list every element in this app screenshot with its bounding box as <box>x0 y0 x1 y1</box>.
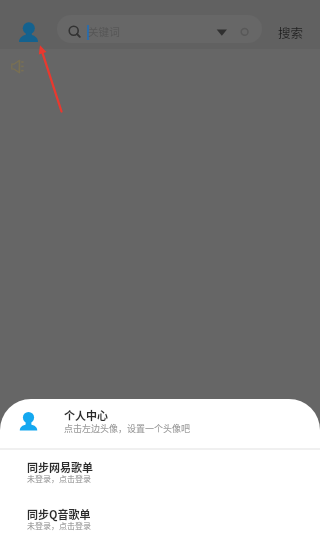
button[interactable]: 同步Q音歌单 <box>0 502 320 546</box>
button[interactable]: 搜索 <box>278 23 304 41</box>
button[interactable]: Volume <box>11 60 24 73</box>
staticText: 未登录，点击登录 <box>27 473 91 485</box>
button[interactable]: 个人中心 <box>0 399 320 448</box>
button[interactable]: 同步网易歌单 <box>0 455 320 499</box>
button[interactable]: 关键词 <box>57 15 262 43</box>
button[interactable]: Profile avatar <box>18 21 38 41</box>
staticText: 同步Q音歌单 <box>27 506 91 522</box>
staticText: 个人中心 <box>64 407 108 423</box>
staticText: 未登录，点击登录 <box>27 520 91 532</box>
staticText: 点击左边头像，设置一个头像吧 <box>64 422 191 435</box>
staticText: 关键词 <box>88 24 120 39</box>
staticText: 同步网易歌单 <box>27 459 93 475</box>
